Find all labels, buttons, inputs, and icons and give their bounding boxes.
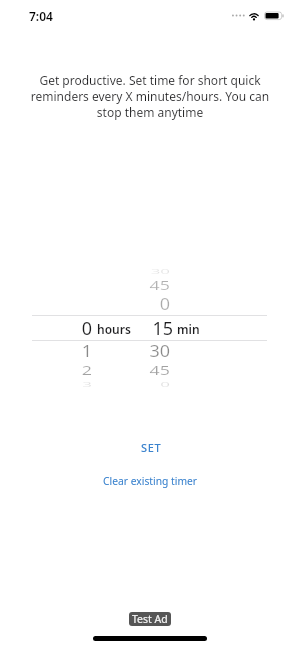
staticText: 30	[114, 266, 170, 276]
staticText: 0	[32, 316, 92, 340]
staticText: 45	[111, 277, 170, 293]
staticText: 30	[110, 340, 170, 362]
staticText: hours	[97, 321, 131, 337]
staticText: 0	[110, 293, 170, 315]
staticText: min	[177, 321, 200, 337]
other: Wi-Fi	[248, 11, 260, 21]
staticText: SET	[141, 440, 162, 455]
staticText: 7:04	[29, 8, 53, 24]
staticText: Get productive. Set time for short quick…	[30, 72, 270, 120]
other: Cellular signal	[232, 13, 245, 18]
staticText: Test Ad	[132, 612, 168, 626]
staticText: Clear existing timer	[103, 474, 198, 488]
staticText: 45	[111, 362, 170, 378]
staticText: 2	[33, 362, 92, 378]
button[interactable]: Test Ad	[129, 612, 171, 626]
staticText: 3	[36, 379, 92, 389]
staticText: 0	[114, 379, 170, 389]
button[interactable]: SET	[116, 434, 185, 461]
staticText: 1	[32, 340, 92, 362]
button[interactable]: Hours picker	[32, 256, 142, 399]
button[interactable]: Clear existing timer	[79, 468, 222, 494]
other: Battery	[264, 11, 285, 21]
button[interactable]: Minutes picker	[142, 256, 267, 399]
staticText: 15	[113, 316, 173, 340]
